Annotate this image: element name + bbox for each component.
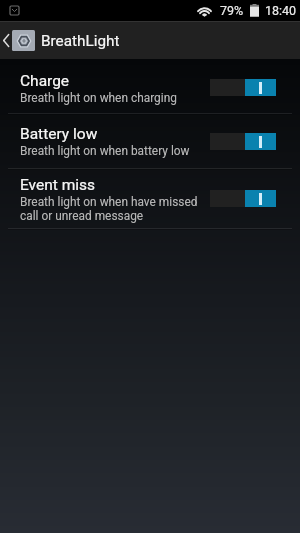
staticText: BreathLight: [41, 32, 120, 50]
staticText: Event miss: [20, 176, 96, 194]
button[interactable]: Charge: [0, 59, 300, 113]
staticText: 18:40: [265, 3, 297, 18]
staticText: Breath light on when have missed: [20, 195, 198, 209]
staticText: 79%: [220, 3, 244, 18]
staticText: Breath light on when charging: [20, 91, 177, 105]
button[interactable]: Battery low: [0, 114, 300, 167]
staticText: Breath light on when battery low: [20, 144, 190, 158]
staticText: Charge: [20, 72, 70, 90]
staticText: Battery low: [20, 125, 98, 143]
button[interactable]: Navigate up: [0, 21, 300, 59]
button[interactable]: Toggle on: [210, 133, 276, 150]
button[interactable]: Event miss: [0, 169, 300, 227]
button[interactable]: Toggle on: [210, 190, 276, 207]
staticText: call or unread message: [20, 209, 144, 223]
button[interactable]: Toggle on: [210, 79, 276, 96]
